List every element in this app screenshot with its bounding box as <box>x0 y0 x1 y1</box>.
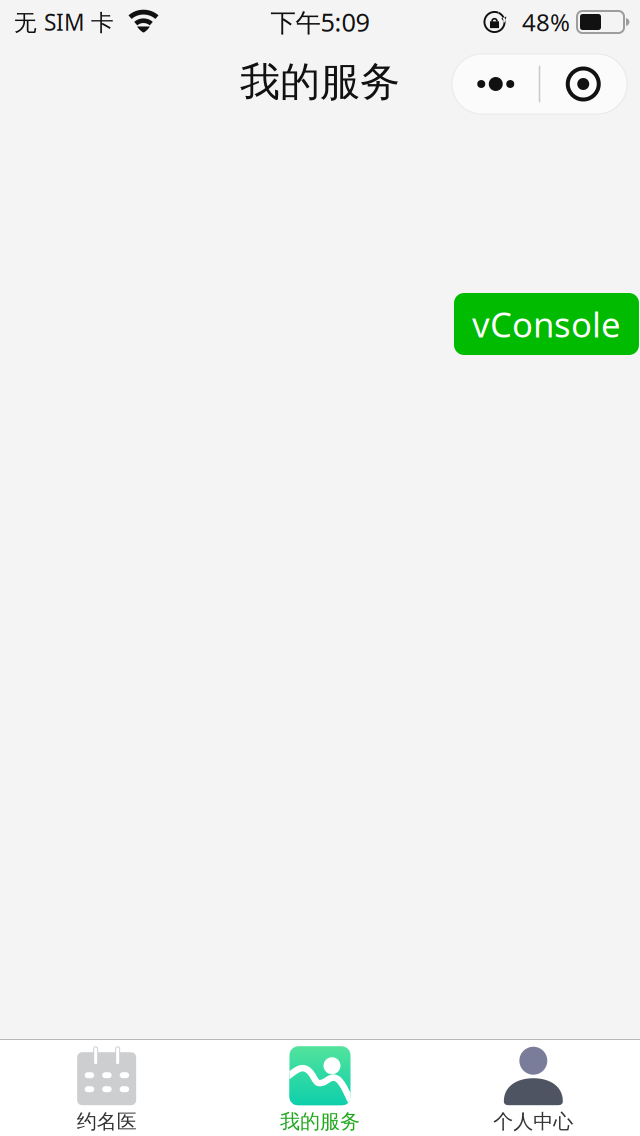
staticText: 无 SIM 卡 <box>14 7 114 37</box>
staticText: 我的服务 <box>280 1109 360 1134</box>
staticText: 个人中心 <box>493 1109 573 1134</box>
staticText: 约名医 <box>77 1109 137 1134</box>
button[interactable]: 个人中心 <box>427 1037 640 1136</box>
staticText: 下午5:09 <box>270 5 369 39</box>
button[interactable]: More <box>453 54 539 114</box>
staticText: 48% <box>522 6 570 38</box>
button[interactable]: vConsole <box>454 293 639 355</box>
button[interactable]: 约名医 <box>0 1037 213 1136</box>
button[interactable]: 我的服务 <box>213 1037 427 1136</box>
staticText: vConsole <box>472 301 621 347</box>
button[interactable]: Close <box>540 54 626 114</box>
staticText: 我的服务 <box>240 57 400 106</box>
